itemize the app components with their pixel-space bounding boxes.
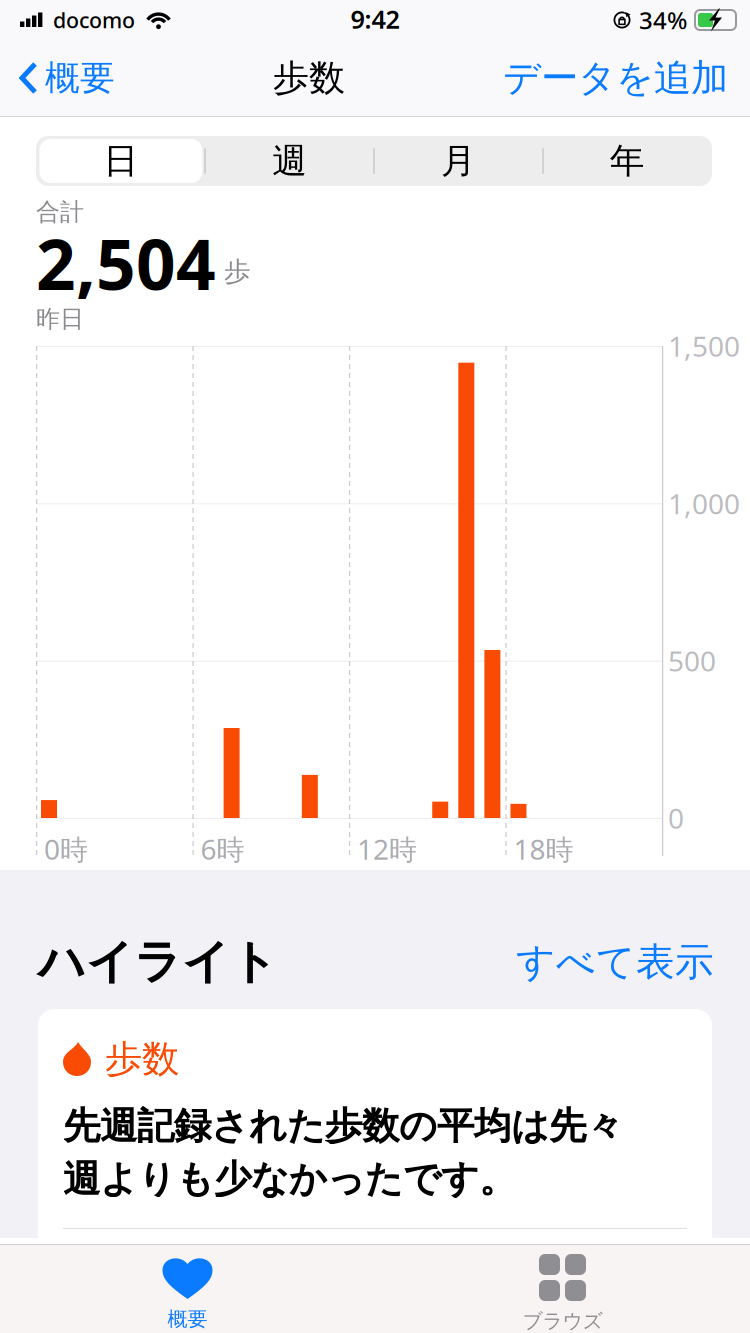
- staticText: 歩数: [273, 56, 345, 100]
- staticText: 18時: [513, 830, 573, 868]
- staticText: 12時: [357, 830, 417, 868]
- staticText: 日: [103, 140, 138, 182]
- staticText: 週: [272, 140, 307, 182]
- staticText: ハイライト: [38, 933, 278, 991]
- staticText: 週よりも少なかったです。: [63, 1156, 516, 1202]
- staticText: すべて表示: [516, 938, 714, 986]
- staticText: ブラウズ: [522, 1309, 602, 1333]
- staticText: 歩: [224, 255, 251, 288]
- staticText: 年: [610, 140, 645, 182]
- button[interactable]: 歩数: [38, 1009, 712, 1250]
- button[interactable]: 年: [543, 136, 712, 186]
- button[interactable]: 概要: [0, 40, 115, 116]
- staticText: docomo: [53, 6, 135, 34]
- staticText: 概要: [45, 57, 115, 99]
- staticText: データを追加: [503, 55, 728, 101]
- button[interactable]: ブラウズ: [375, 1244, 750, 1333]
- staticText: 1,000: [668, 485, 740, 522]
- button[interactable]: 月: [374, 136, 543, 186]
- staticText: 2,504: [36, 217, 216, 309]
- staticText: 0: [668, 799, 684, 837]
- staticText: 1,500: [668, 327, 740, 365]
- staticText: 概要: [167, 1307, 207, 1331]
- staticText: 34%: [639, 4, 687, 36]
- button[interactable]: データを追加: [503, 40, 750, 116]
- button[interactable]: 概要: [0, 1244, 375, 1333]
- staticText: 歩数: [105, 1036, 179, 1082]
- staticText: 先週記録された歩数の平均は先々: [63, 1103, 623, 1149]
- staticText: 6時: [200, 830, 244, 868]
- staticText: 昨日: [36, 304, 84, 334]
- staticText: 9:42: [350, 2, 399, 36]
- staticText: 合計: [36, 197, 84, 227]
- staticText: 月: [441, 140, 476, 182]
- staticText: 0時: [44, 830, 88, 868]
- button[interactable]: 週: [205, 136, 374, 186]
- staticText: 500: [668, 642, 716, 679]
- button[interactable]: すべて表示: [516, 935, 714, 989]
- button[interactable]: 日: [36, 136, 205, 186]
